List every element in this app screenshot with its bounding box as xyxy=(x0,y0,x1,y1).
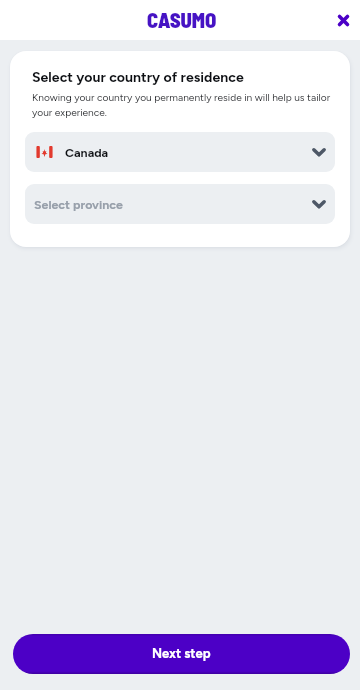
button[interactable]: Close xyxy=(328,5,358,35)
staticText: Knowing your country you permanently res… xyxy=(32,91,335,118)
staticText: Next step xyxy=(152,646,211,662)
button[interactable]: Next step xyxy=(13,634,350,674)
button[interactable]: Canada xyxy=(25,132,335,172)
staticText: CASUMO xyxy=(147,7,217,32)
button[interactable]: Select province xyxy=(25,184,335,224)
staticText: Select your country of residence xyxy=(32,69,244,86)
staticText: Canada xyxy=(65,145,109,160)
staticText: Select province xyxy=(34,197,123,212)
